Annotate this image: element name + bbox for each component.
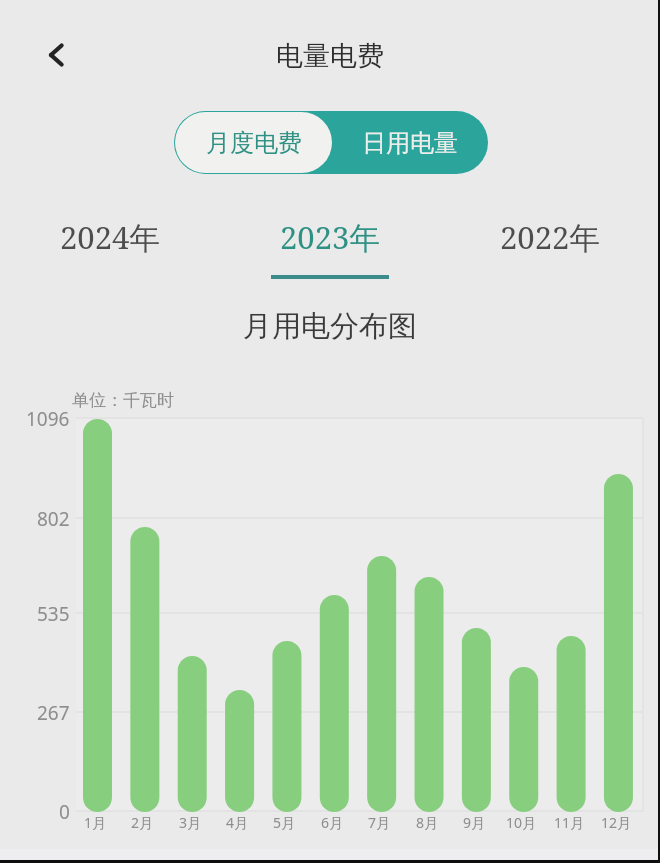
- staticText: 月用电分布图: [0, 308, 660, 345]
- staticText: 2024年: [60, 216, 161, 258]
- button[interactable]: 2024年: [0, 216, 220, 275]
- staticText: 9月: [463, 813, 486, 832]
- staticText: 电量电费: [0, 39, 660, 73]
- staticText: 1月: [84, 813, 107, 832]
- staticText: 10月: [506, 813, 537, 832]
- staticText: 5月: [273, 813, 296, 832]
- staticText: 535: [37, 601, 70, 627]
- staticText: 日用电量: [362, 128, 458, 158]
- staticText: 7月: [368, 813, 391, 832]
- staticText: 3月: [179, 813, 202, 832]
- staticText: 8月: [416, 813, 439, 832]
- staticText: 802: [37, 506, 70, 532]
- staticText: 6月: [321, 813, 344, 832]
- staticText: 月度电费: [206, 128, 302, 158]
- staticText: 2023年: [280, 216, 381, 258]
- staticText: 4月: [226, 813, 249, 832]
- staticText: 1096: [26, 406, 70, 432]
- staticText: 单位：千瓦时: [72, 390, 174, 411]
- button[interactable]: 2022年: [440, 216, 660, 275]
- button[interactable]: Back: [32, 31, 80, 79]
- staticText: 0: [59, 799, 70, 825]
- button[interactable]: 日用电量: [331, 112, 488, 173]
- staticText: 267: [37, 700, 70, 726]
- staticText: 2022年: [500, 216, 601, 258]
- staticText: 12月: [601, 813, 632, 832]
- staticText: 2月: [131, 813, 154, 832]
- button[interactable]: 月度电费: [175, 112, 332, 173]
- staticText: 11月: [554, 813, 585, 832]
- button[interactable]: 2023年: [220, 216, 440, 279]
